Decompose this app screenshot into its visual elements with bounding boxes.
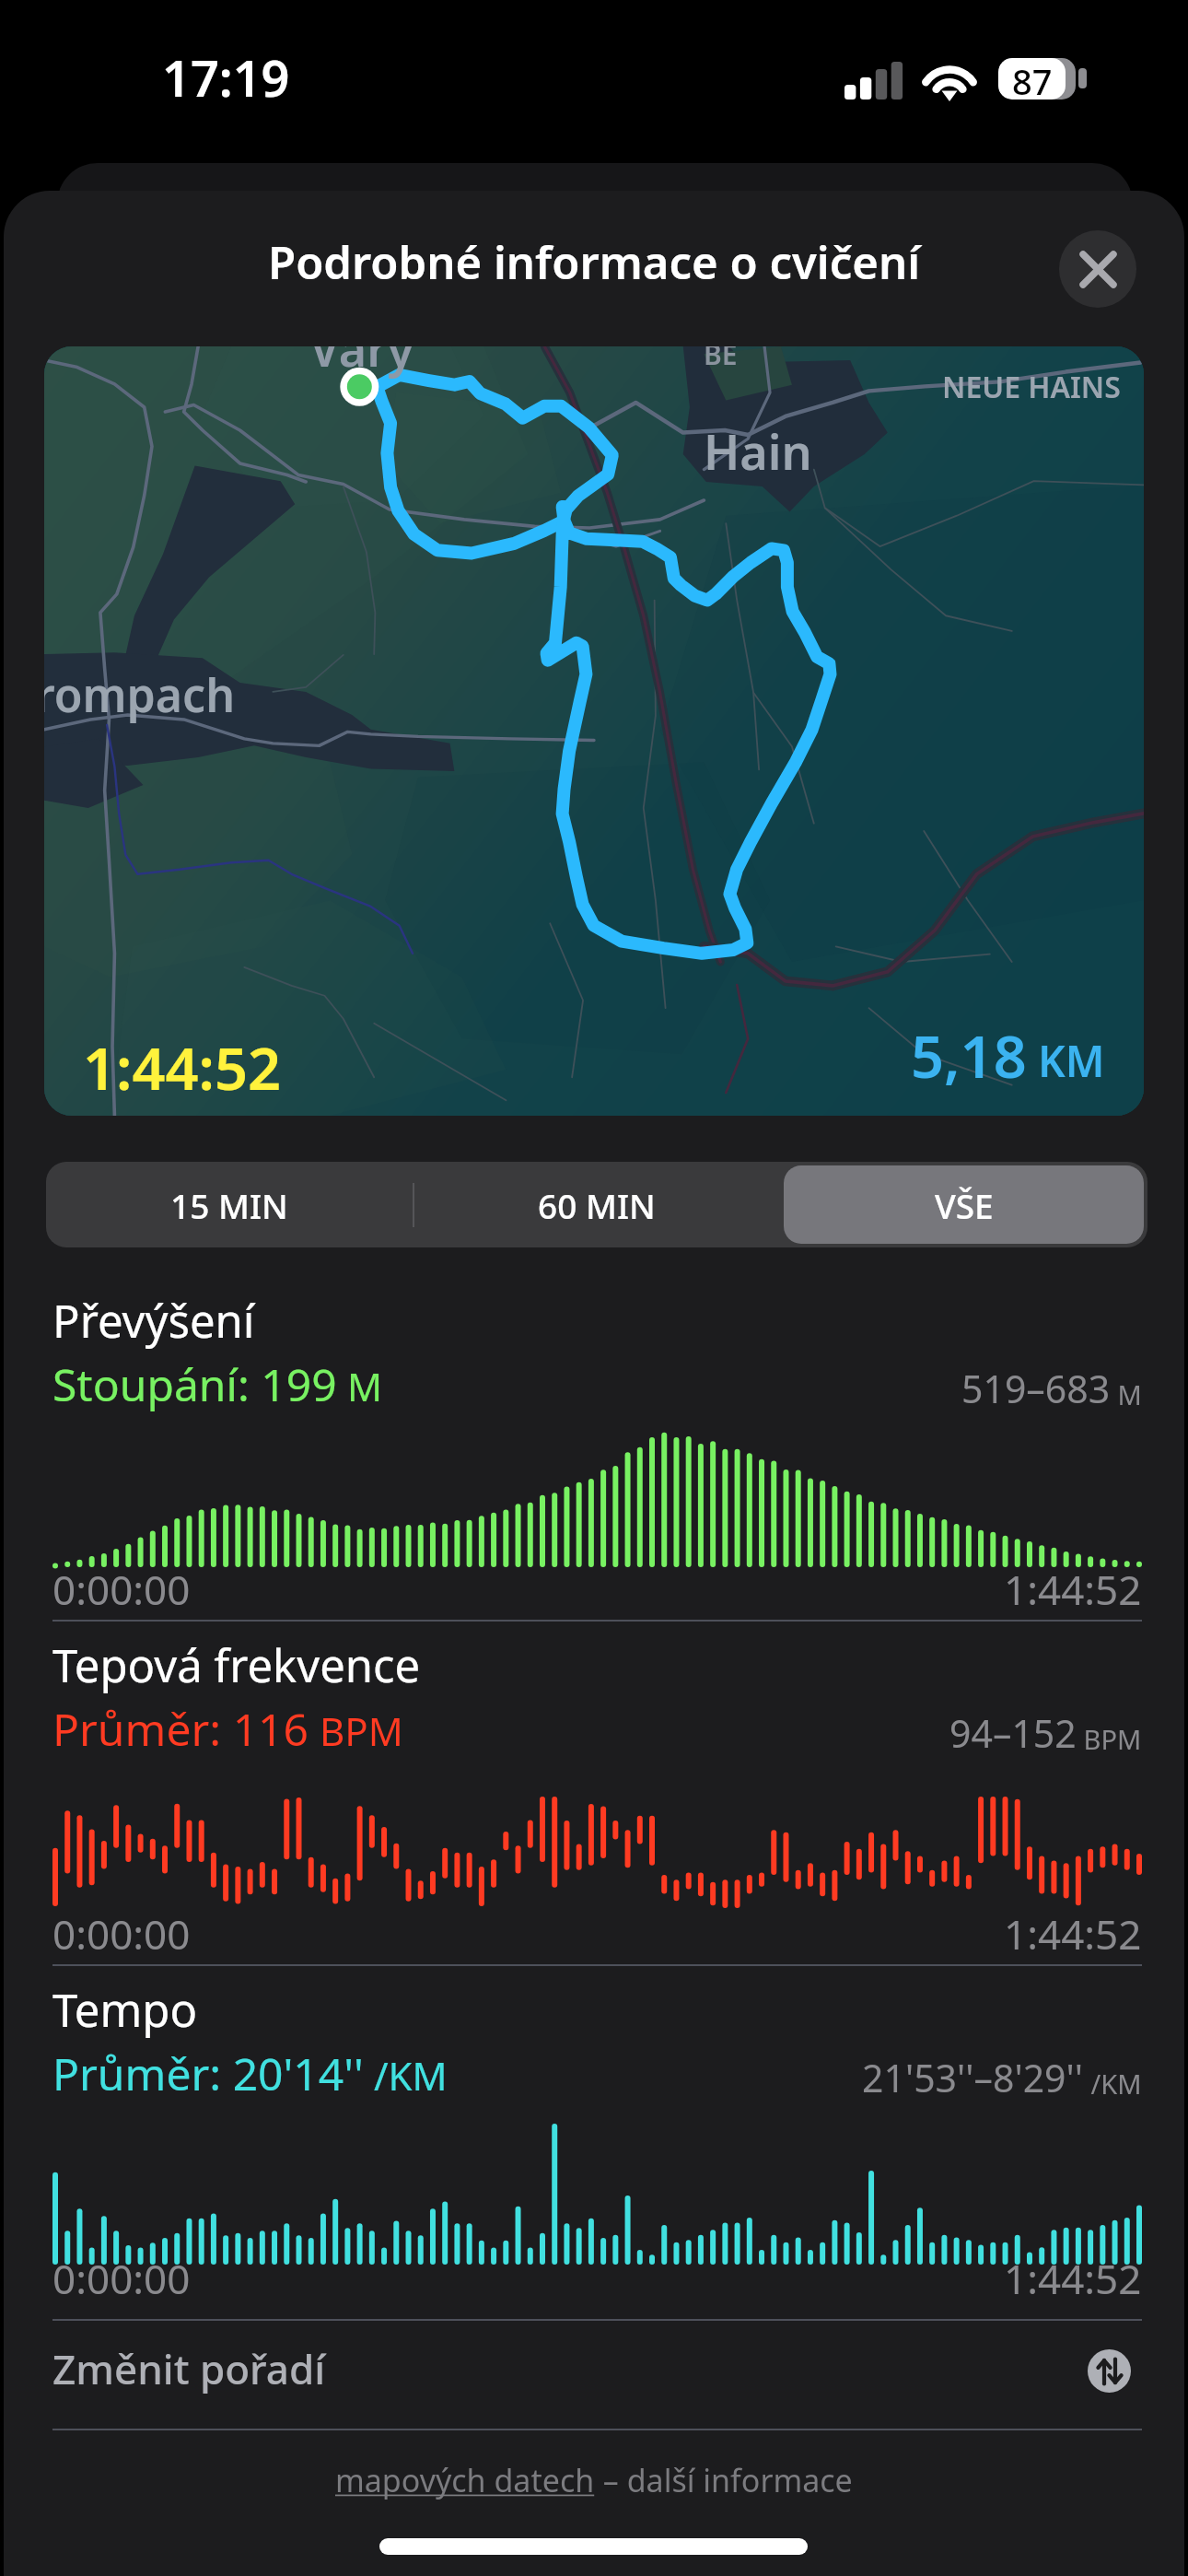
staticText: Průměr: 20'14'' [52,2043,364,2103]
staticText: Převýšení [52,1290,255,1352]
staticText: KM [1027,1032,1105,1090]
staticText: 21'53''–8'29'' [862,2052,1084,2103]
staticText: Průměr: 116 [52,1699,309,1759]
staticText: Stoupání: 199 [52,1354,337,1414]
staticText: rompach [44,663,236,726]
staticText: 60 MIN [538,1182,656,1228]
staticText: 94–152 [949,1707,1077,1759]
staticText: BPM [1077,1721,1142,1757]
staticText: 17:19 [162,43,290,111]
staticText: BE [704,346,738,373]
button[interactable]: Změnit pořadí [0,2316,1188,2425]
staticText: 519–683 [961,1363,1111,1414]
staticText: 1:44:52 [1004,1906,1142,1961]
staticText: Hain [704,418,812,484]
staticText: 0:00:00 [52,1906,191,1961]
staticText: Tempo [52,1979,198,2041]
staticText: 1:44:52 [1004,2251,1142,2306]
staticText: 1:44:52 [83,1028,281,1107]
staticText: BPM [309,1704,403,1757]
staticText: NEUE HAINS [942,367,1121,407]
staticText: 87 [1012,58,1053,99]
staticText: – další informace [595,2459,853,2501]
button[interactable]: Mapa trasy [44,346,1144,1116]
button[interactable]: VŠE [780,1162,1147,1247]
staticText: M [337,1360,383,1412]
button[interactable]: Zavřít [1059,230,1136,308]
button[interactable]: 60 MIN [413,1162,780,1247]
staticText: /KM [1084,2066,1142,2102]
button[interactable]: mapových datech [335,2459,595,2501]
staticText: 5,18 [911,1016,1027,1095]
button[interactable]: 15 MIN [46,1162,413,1247]
staticText: Podrobné informace o cvičení [268,231,921,293]
staticText: 0:00:00 [52,2251,191,2306]
staticText: M [1111,1376,1142,1412]
staticText: 1:44:52 [1004,1562,1142,1617]
staticText: /KM [364,2049,448,2102]
staticText: Tepová frekvence [52,1634,421,1696]
staticText: Změnit pořadí [52,2341,326,2396]
staticText: 15 MIN [170,1182,288,1228]
staticText: 0:00:00 [52,1562,191,1617]
staticText: VŠE [935,1182,994,1228]
staticText: Vary [309,346,414,381]
